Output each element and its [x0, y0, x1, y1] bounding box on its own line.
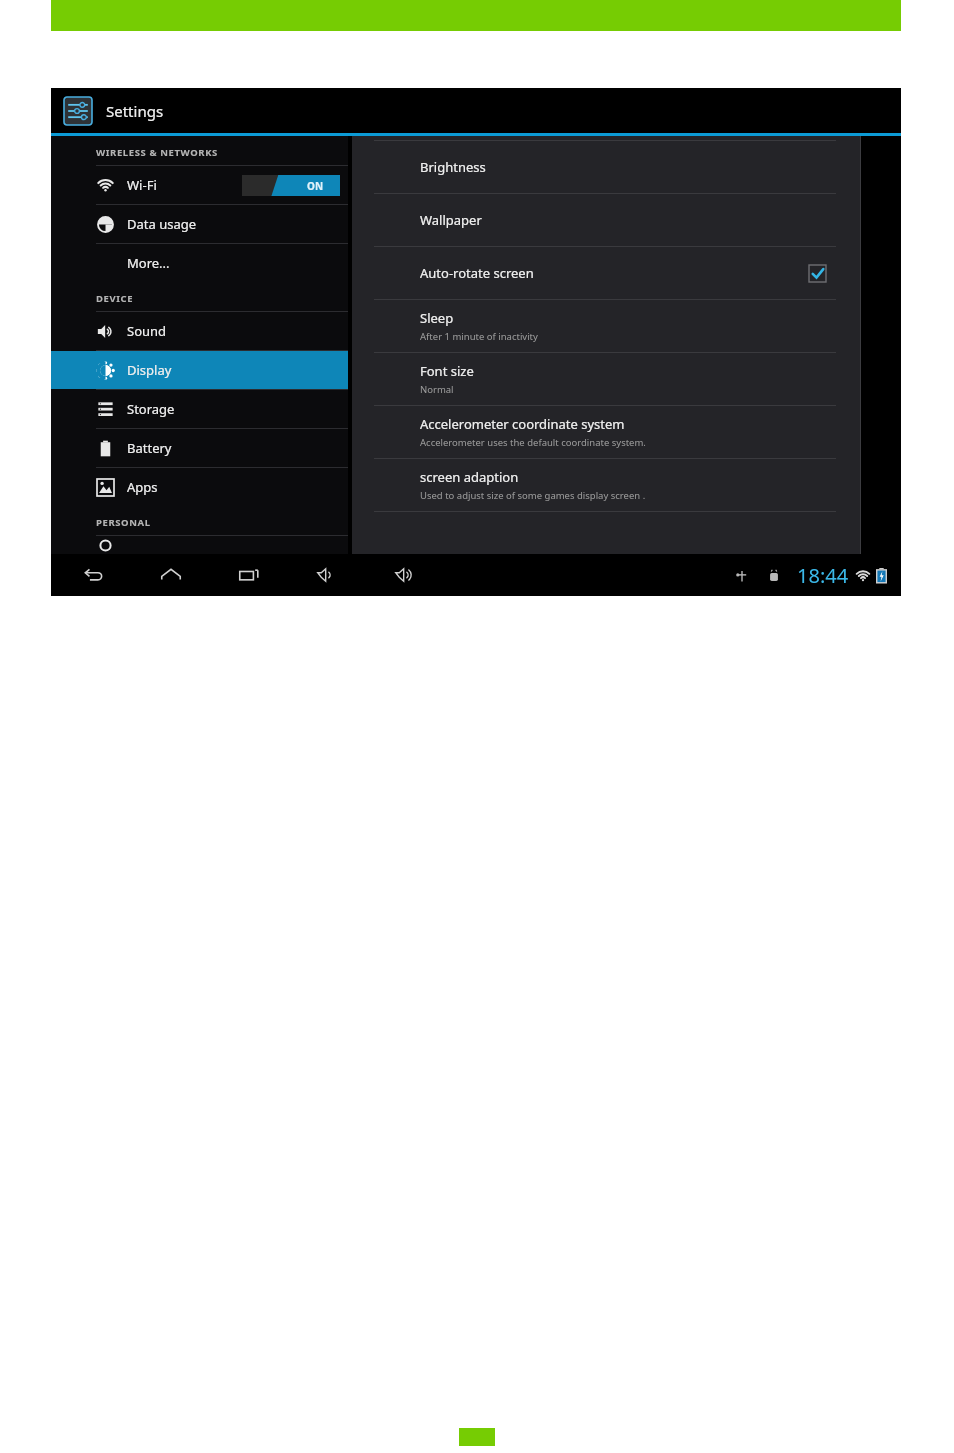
staticText: Data usage — [127, 215, 197, 233]
button[interactable]: Auto-rotate screen toggle — [809, 265, 826, 282]
staticText: DEVICE — [96, 292, 134, 305]
button[interactable]: Font size — [374, 352, 836, 405]
staticText: Sound — [127, 322, 167, 340]
staticText: Settings — [106, 101, 164, 121]
button[interactable]: Apps — [51, 468, 348, 506]
staticText: Display — [127, 361, 172, 379]
button[interactable]: Recent apps — [229, 554, 269, 596]
staticText: Accelerometer uses the default coordinat… — [420, 436, 646, 449]
staticText: Wallpaper — [420, 211, 482, 229]
staticText: ON — [307, 179, 324, 193]
button[interactable]: Auto-rotate screen — [374, 246, 836, 299]
button[interactable]: Volume up — [385, 554, 425, 596]
button[interactable]: Brightness — [374, 140, 836, 193]
button[interactable]: Wi-Fi — [51, 166, 348, 204]
button[interactable]: Sound — [51, 312, 348, 350]
button[interactable]: Display — [51, 351, 348, 389]
staticText: Wi-Fi — [127, 176, 157, 194]
staticText: Brightness — [420, 158, 486, 176]
staticText: After 1 minute of inactivity — [420, 330, 538, 343]
button[interactable] — [51, 536, 348, 554]
button[interactable]: screen adaption — [374, 458, 836, 511]
button[interactable]: More... — [51, 244, 348, 282]
staticText: WIRELESS & NETWORKS — [96, 146, 218, 159]
staticText: Battery — [127, 439, 172, 457]
button[interactable]: Battery — [51, 429, 348, 467]
button[interactable]: Accelerometer coordinate system — [374, 405, 836, 458]
button[interactable]: Home — [151, 554, 191, 596]
staticText: Storage — [127, 400, 175, 418]
staticText: screen adaption — [420, 468, 519, 486]
staticText: Auto-rotate screen — [420, 264, 534, 282]
staticText: 18:44 — [797, 562, 849, 589]
staticText: Accelerometer coordinate system — [420, 415, 625, 433]
staticText: PERSONAL — [96, 516, 151, 529]
button[interactable]: Sleep — [374, 299, 836, 352]
staticText: Sleep — [420, 309, 454, 327]
button[interactable]: Back — [73, 554, 113, 596]
staticText: Normal — [420, 383, 454, 396]
staticText: Font size — [420, 362, 474, 380]
button[interactable]: ON — [242, 175, 340, 196]
staticText: Used to adjust size of some games displa… — [420, 489, 646, 502]
button[interactable]: Data usage — [51, 205, 348, 243]
button[interactable]: Volume down — [307, 554, 347, 596]
button[interactable]: Storage — [51, 390, 348, 428]
staticText: Apps — [127, 478, 158, 496]
staticText: More... — [127, 254, 170, 272]
button[interactable]: Wallpaper — [374, 193, 836, 246]
